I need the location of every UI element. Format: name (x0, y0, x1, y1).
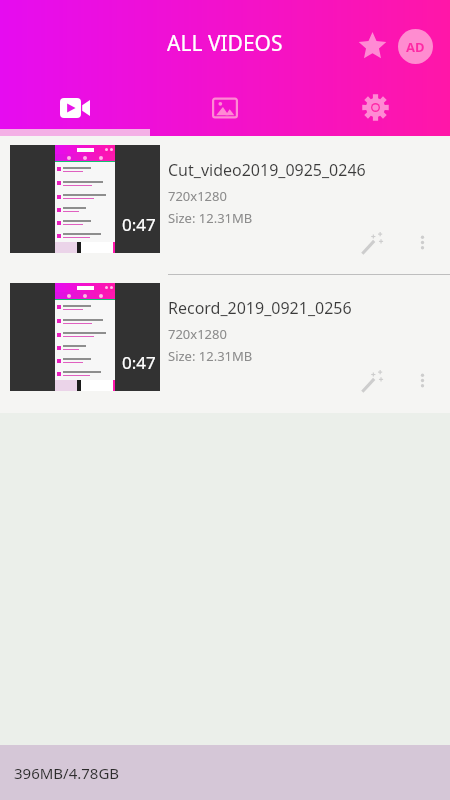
staticText: ALL VIDEOS (167, 29, 283, 58)
staticText: 0:47 (122, 351, 156, 374)
button[interactable]: 396MB/4.78GB (0, 745, 450, 800)
staticText: 0:47 (122, 213, 156, 236)
staticText: Record_2019_0921_0256 (168, 297, 352, 319)
button[interactable]: Settings (300, 86, 450, 129)
button[interactable]: Edit video (350, 360, 394, 404)
staticText: 720x1280 (168, 325, 227, 343)
button[interactable]: Images tab (150, 86, 300, 129)
button[interactable]: Edit video (350, 222, 394, 266)
button[interactable]: More options (402, 360, 442, 400)
button[interactable]: 0:47 (0, 136, 450, 274)
button[interactable]: Favorites (353, 27, 391, 65)
staticText: 396MB/4.78GB (14, 763, 120, 783)
button[interactable]: Advertisement (398, 29, 433, 64)
staticText: Size: 12.31MB (168, 209, 253, 227)
staticText: AD (406, 38, 425, 56)
button[interactable]: More options (402, 222, 442, 262)
staticText: Cut_video2019_0925_0246 (168, 159, 366, 181)
staticText: 720x1280 (168, 187, 227, 205)
button[interactable]: Videos tab (0, 86, 150, 129)
staticText: Size: 12.31MB (168, 347, 253, 365)
button[interactable]: 0:47 (0, 274, 450, 412)
